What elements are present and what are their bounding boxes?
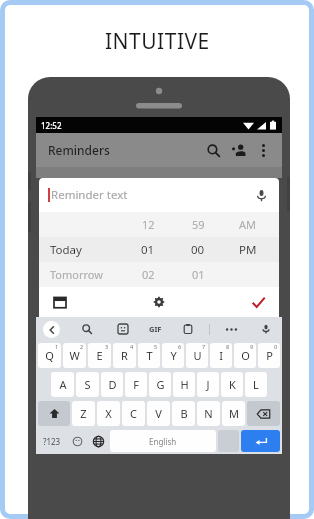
staticText: P — [266, 348, 273, 363]
button[interactable]: Today — [39, 237, 279, 262]
button[interactable]: M — [222, 401, 245, 426]
button[interactable]: Z — [72, 401, 95, 426]
button[interactable]: O — [234, 343, 256, 368]
button[interactable]: J — [197, 372, 219, 397]
staticText: 0 — [274, 343, 278, 350]
staticText: E — [96, 348, 103, 363]
button[interactable]: More — [222, 320, 240, 338]
staticText: Q — [45, 348, 54, 363]
staticText: 12 — [142, 217, 155, 232]
button[interactable]: 12 — [39, 212, 279, 237]
button[interactable]: R — [113, 343, 136, 368]
staticText: A — [59, 377, 67, 392]
staticText: T — [146, 348, 153, 363]
staticText: Y — [170, 348, 177, 363]
staticText: 12:52 — [41, 120, 62, 131]
button[interactable]: Enter — [241, 430, 280, 452]
staticText: PM — [239, 242, 257, 258]
button[interactable]: U — [186, 343, 208, 368]
button[interactable]: Stickers — [114, 320, 132, 338]
button[interactable]: Emoji — [67, 430, 88, 452]
button[interactable]: K — [221, 372, 243, 397]
staticText: O — [241, 348, 250, 363]
button[interactable]: Y — [162, 343, 184, 368]
button[interactable]: More options — [252, 139, 274, 161]
button[interactable]: Search — [200, 137, 226, 163]
staticText: 01 — [192, 267, 205, 282]
button[interactable]: Backspace — [247, 401, 280, 426]
staticText: M — [229, 406, 239, 421]
staticText: 59 — [192, 217, 205, 232]
staticText: J — [206, 377, 210, 392]
staticText: U — [193, 348, 202, 363]
staticText: Today — [50, 242, 82, 258]
button[interactable]: Calendar — [50, 292, 70, 312]
staticText: 4 — [130, 343, 134, 350]
staticText: 01 — [141, 242, 155, 258]
button[interactable]: Reminder text — [39, 178, 279, 212]
staticText: 1 — [55, 343, 59, 350]
button[interactable]: Settings — [149, 292, 169, 312]
button[interactable]: Clipboard — [179, 320, 197, 338]
button[interactable]: F — [125, 372, 147, 397]
staticText: S — [84, 377, 91, 392]
button[interactable]: I — [210, 343, 232, 368]
button[interactable]: S — [76, 372, 99, 397]
staticText: H — [180, 377, 189, 392]
button[interactable]: Change language — [88, 430, 109, 452]
staticText: R — [121, 348, 128, 363]
staticText: I — [219, 348, 223, 363]
button[interactable]: A — [51, 372, 74, 397]
button[interactable]: Shift — [38, 401, 70, 426]
staticText: 02 — [142, 267, 155, 282]
button[interactable]: L — [245, 372, 267, 397]
staticText: L — [253, 377, 259, 392]
staticText: C — [130, 406, 137, 421]
staticText: F — [133, 377, 139, 392]
staticText: D — [108, 377, 117, 392]
button[interactable]: T — [138, 343, 160, 368]
button[interactable]: N — [197, 401, 220, 426]
button[interactable]: W — [63, 343, 86, 368]
button[interactable]: X — [97, 401, 120, 426]
staticText: W — [69, 348, 80, 363]
button[interactable]: H — [173, 372, 195, 397]
staticText: 2 — [80, 343, 84, 350]
staticText: ?123 — [43, 436, 61, 447]
button[interactable]: Back — [43, 321, 60, 338]
button[interactable]: C — [122, 401, 145, 426]
button[interactable]: G — [149, 372, 171, 397]
staticText: GIF — [149, 324, 162, 334]
staticText: Z — [80, 406, 87, 421]
button[interactable]: Voice typing — [257, 320, 275, 338]
staticText: X — [105, 406, 112, 421]
staticText: B — [180, 406, 188, 421]
staticText: Tomorrow — [50, 267, 103, 282]
staticText: Reminders — [48, 142, 110, 158]
button[interactable]: V — [147, 401, 170, 426]
staticText: N — [204, 406, 213, 421]
button[interactable]: D — [101, 372, 123, 397]
staticText: K — [229, 377, 236, 392]
button[interactable]: Voice input — [251, 185, 271, 205]
staticText: 8 — [226, 343, 230, 350]
button[interactable]: ?123 — [38, 430, 66, 452]
button[interactable]: E — [88, 343, 111, 368]
staticText: AM — [239, 217, 257, 232]
button[interactable]: Q — [38, 343, 61, 368]
staticText: INTUITIVE — [105, 27, 210, 56]
button[interactable]: GIF — [149, 324, 162, 334]
staticText: 6 — [178, 343, 182, 350]
button[interactable]: English — [110, 430, 216, 452]
staticText: 5 — [154, 343, 158, 350]
button[interactable]: Search — [78, 320, 96, 338]
staticText: G — [156, 377, 165, 392]
staticText: 9 — [250, 343, 254, 350]
button[interactable]: P — [258, 343, 280, 368]
button[interactable]: B — [172, 401, 195, 426]
button[interactable]: Tomorrow — [39, 262, 279, 287]
button[interactable]: Add person — [226, 137, 252, 163]
staticText: English — [149, 436, 177, 447]
button[interactable]: Confirm — [248, 292, 268, 312]
